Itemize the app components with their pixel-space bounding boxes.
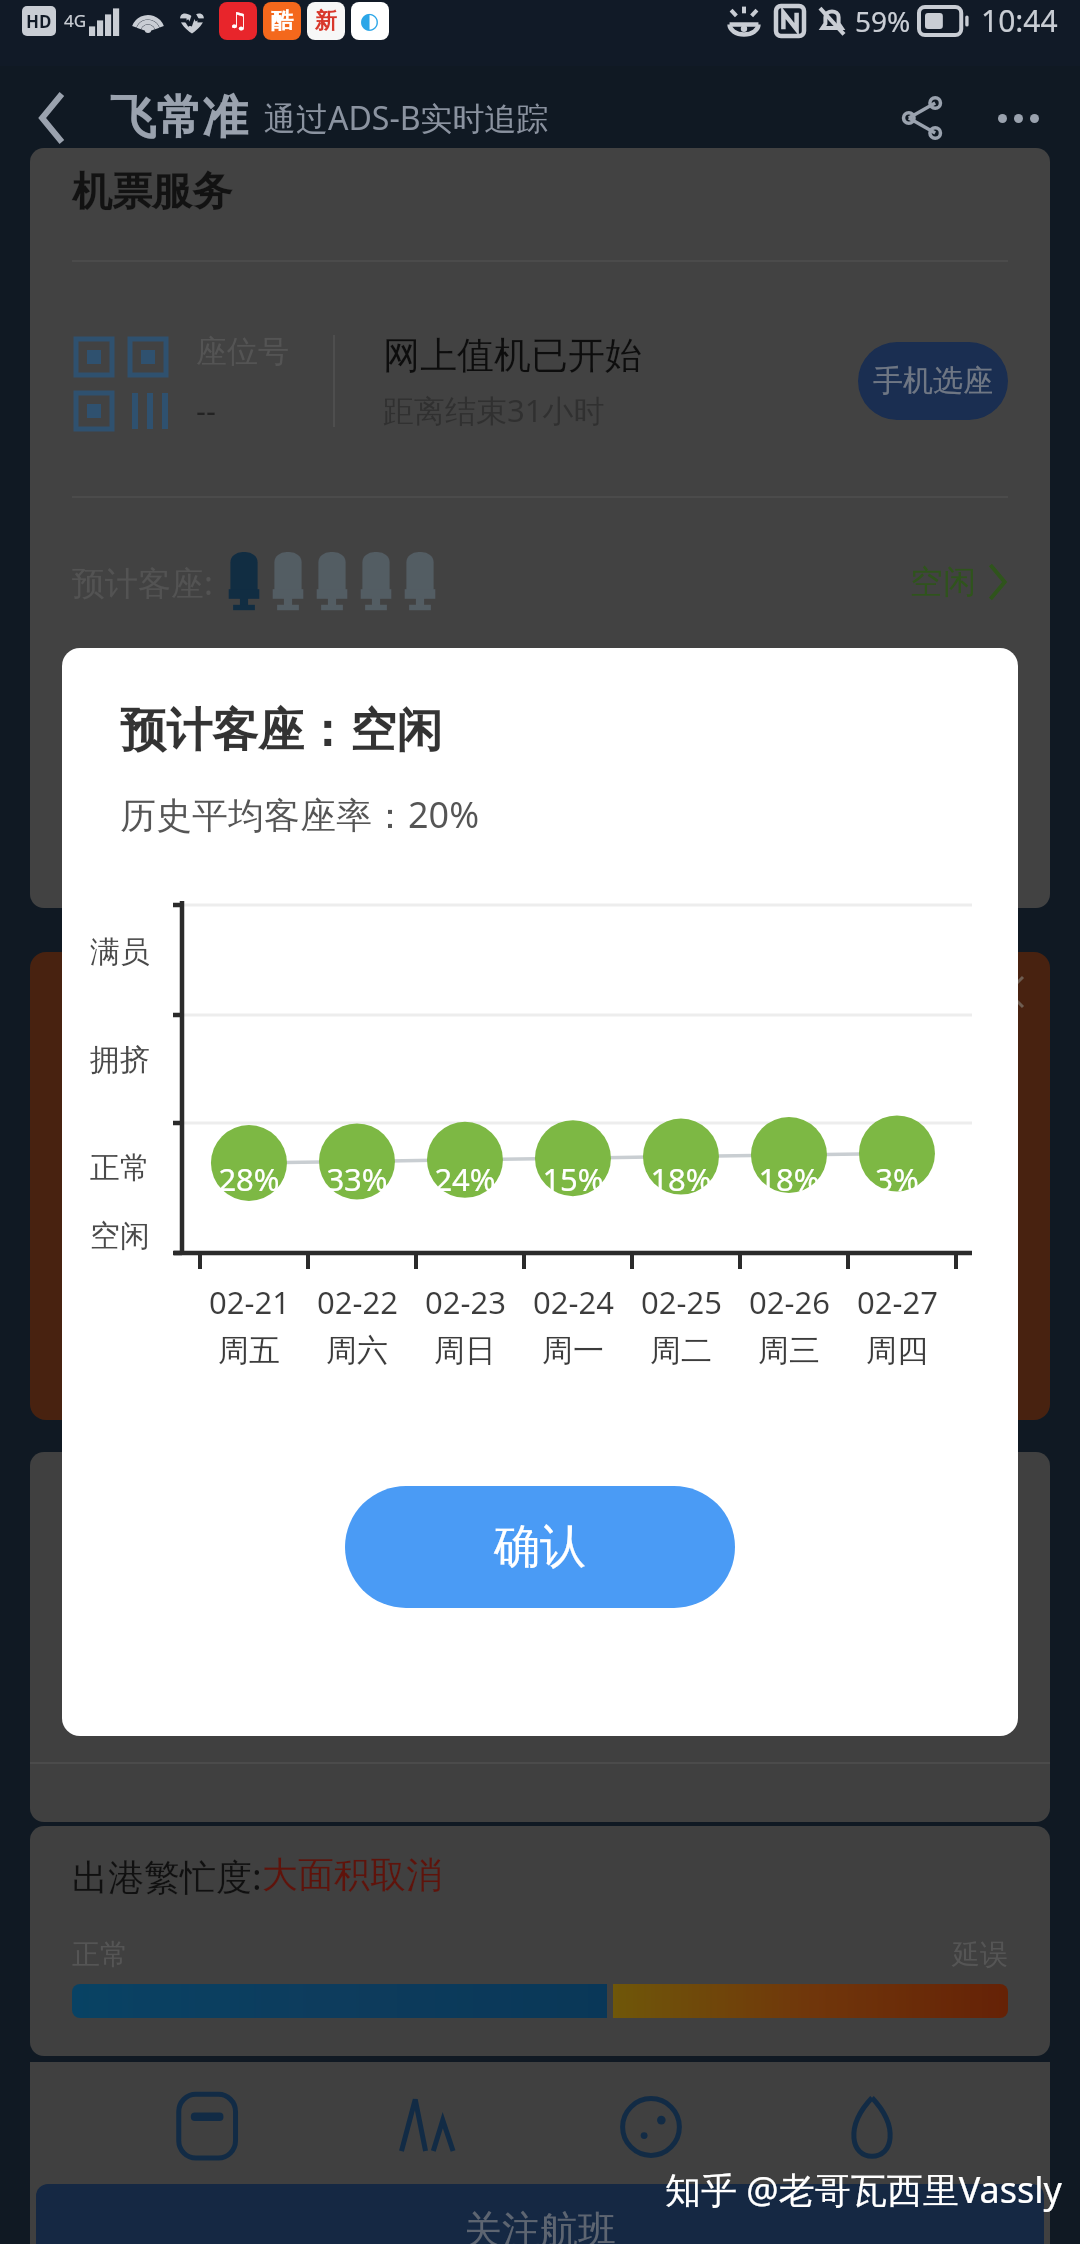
- staticText: 3%: [875, 1158, 919, 1200]
- staticText: 新: [315, 7, 337, 35]
- button[interactable]: 手机选座: [858, 342, 1008, 420]
- staticText: 周五: [218, 1331, 280, 1370]
- staticText: 18%: [650, 1158, 712, 1200]
- staticText: 周一: [542, 1331, 604, 1370]
- staticText: 拥挤: [90, 1041, 150, 1079]
- staticText: 02-26: [749, 1281, 830, 1323]
- staticText: 周四: [866, 1331, 928, 1370]
- staticText: 10:44: [981, 0, 1058, 41]
- button[interactable]: 更多: [970, 70, 1066, 166]
- button[interactable]: 分享: [874, 70, 970, 166]
- staticText: 02-21: [209, 1281, 290, 1323]
- staticText: 通过ADS-B实时追踪: [264, 96, 549, 140]
- staticText: 02-22: [317, 1281, 398, 1323]
- staticText: 周二: [650, 1331, 712, 1370]
- staticText: 18%: [758, 1158, 820, 1200]
- staticText: 15%: [542, 1158, 604, 1200]
- staticText: 正常: [90, 1149, 150, 1187]
- staticText: 网上值机已开始: [383, 332, 642, 379]
- staticText: 空闲: [910, 561, 976, 603]
- button[interactable]: 返回: [0, 66, 104, 170]
- staticText: ♫: [228, 8, 248, 34]
- staticText: 02-24: [533, 1281, 614, 1323]
- staticText: 酷: [271, 7, 293, 35]
- staticText: 手机选座: [873, 362, 993, 400]
- button[interactable]: 关闭: [982, 966, 1034, 1018]
- staticText: 飞常准: [110, 89, 248, 147]
- staticText: 延误: [952, 1937, 1008, 1972]
- staticText: 周六: [326, 1331, 388, 1370]
- staticText: 出港繁忙度:: [72, 1852, 262, 1901]
- staticText: 满员: [90, 933, 150, 971]
- staticText: 空闲: [90, 1217, 150, 1255]
- staticText: 座位号: [196, 332, 289, 371]
- staticText: 距离结束31小时: [383, 389, 605, 431]
- staticText: 02-27: [857, 1281, 938, 1323]
- staticText: 历史平均客座率：20%: [120, 790, 480, 839]
- staticText: 大面积取消: [262, 1852, 442, 1897]
- staticText: 02-23: [425, 1281, 506, 1323]
- staticText: 确认: [494, 1518, 586, 1576]
- staticText: HD: [26, 10, 52, 33]
- button[interactable]: 确认: [345, 1486, 735, 1608]
- button[interactable]: 预计客座:: [30, 532, 1050, 632]
- staticText: 周三: [758, 1331, 820, 1370]
- staticText: 02-25: [641, 1281, 722, 1323]
- staticText: 59%: [855, 2, 911, 40]
- staticText: 关注航班: [464, 2206, 616, 2244]
- staticText: 正常: [72, 1937, 128, 1972]
- staticText: 33%: [326, 1158, 388, 1200]
- staticText: 预计客座：空闲: [120, 702, 442, 760]
- staticText: ◐: [360, 8, 380, 34]
- button[interactable]: 关注航班: [36, 2184, 1044, 2244]
- staticText: 4G: [64, 9, 87, 32]
- button[interactable]: 座位号: [30, 306, 1050, 456]
- staticText: --: [196, 389, 216, 431]
- staticText: 知乎 @老哥瓦西里Vassly: [665, 2165, 1062, 2214]
- staticText: 24%: [434, 1158, 496, 1200]
- staticText: 28%: [218, 1158, 280, 1200]
- staticText: 预计客座:: [72, 560, 213, 605]
- staticText: 机票服务: [72, 166, 232, 216]
- staticText: 周日: [434, 1331, 496, 1370]
